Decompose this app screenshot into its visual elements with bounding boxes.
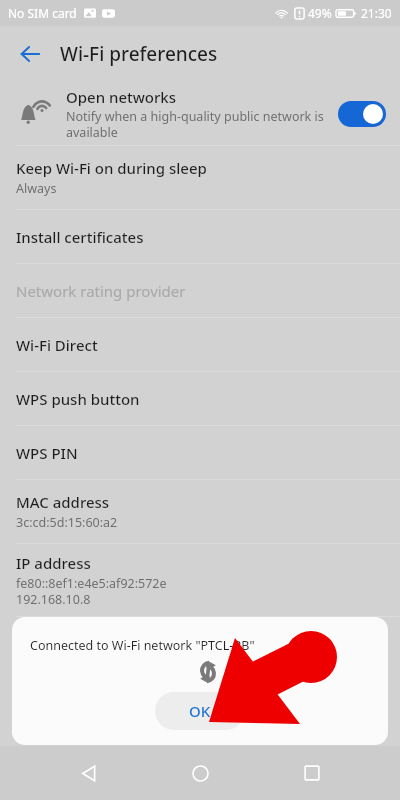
- button[interactable]: MAC address: [0, 480, 400, 543]
- staticText: Install certificates: [16, 227, 144, 247]
- button[interactable]: Recent apps: [288, 749, 336, 797]
- button[interactable]: Back: [8, 32, 52, 76]
- staticText: MAC address: [16, 492, 110, 512]
- staticText: WPS push button: [16, 389, 140, 409]
- button[interactable]: Network rating provider: [0, 264, 400, 317]
- button[interactable]: Wi-Fi Direct: [0, 318, 400, 371]
- button[interactable]: WPS push button: [0, 372, 400, 425]
- staticText: OK: [189, 701, 211, 721]
- staticText: 21:30: [361, 5, 392, 21]
- button[interactable]: Sync: [193, 657, 223, 687]
- staticText: No SIM card: [8, 5, 77, 21]
- button[interactable]: Back: [64, 749, 112, 797]
- staticText: 3c:cd:5d:15:60:a2: [16, 514, 118, 531]
- button[interactable]: IP address: [0, 544, 400, 616]
- staticText: Notify when a high-quality public networ…: [66, 108, 328, 140]
- button[interactable]: Install certificates: [0, 210, 400, 263]
- button[interactable]: Open networks toggle: [338, 101, 386, 127]
- staticText: WPS PIN: [16, 443, 78, 463]
- button[interactable]: WPS PIN: [0, 426, 400, 479]
- button[interactable]: Home: [176, 749, 224, 797]
- staticText: fe80::8ef1:e4e5:af92:572e 192.168.10.8: [16, 575, 167, 607]
- button[interactable]: Open networks: [0, 82, 400, 145]
- staticText: 49%: [308, 5, 332, 21]
- staticText: Connected to Wi-Fi network "PTCL-BB": [30, 637, 255, 654]
- button[interactable]: Keep Wi-Fi on during sleep: [0, 146, 400, 209]
- staticText: Wi-Fi Direct: [16, 335, 98, 355]
- staticText: Network rating provider: [16, 281, 186, 301]
- staticText: Wi-Fi preferences: [60, 41, 218, 67]
- staticText: Open networks: [66, 87, 177, 107]
- staticText: Keep Wi-Fi on during sleep: [16, 158, 207, 178]
- button[interactable]: OK: [155, 692, 245, 730]
- staticText: Always: [16, 180, 57, 197]
- staticText: IP address: [16, 553, 91, 573]
